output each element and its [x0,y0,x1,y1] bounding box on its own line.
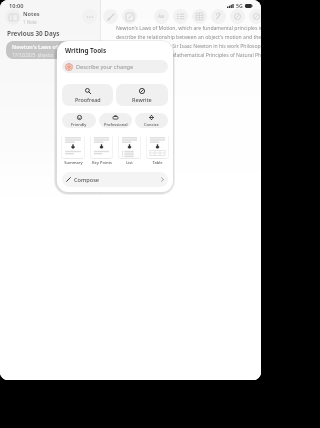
staticText: 1 Note [23,19,37,25]
button[interactable]: Compose [62,172,168,187]
button[interactable]: Checklist [173,9,188,24]
button[interactable]: Concise [135,113,168,128]
staticText: Friendly [71,122,87,127]
staticText: Describe your change [76,63,134,71]
staticText: Professional [104,122,128,127]
staticText: Proofread [75,96,101,103]
button[interactable]: Key Points [91,134,112,165]
button[interactable]: Proofread [62,84,113,106]
staticText: Compose [74,176,100,184]
button[interactable]: Newton's Laws of Motio [6,41,97,59]
button[interactable]: Friendly [62,113,96,128]
staticText: Concise [144,122,159,127]
button[interactable]: Table [147,134,168,165]
staticText: Notes [23,10,40,18]
button[interactable]: Summary [62,134,84,165]
button[interactable]: Share [249,9,261,24]
staticText: Key Points [92,160,112,165]
button[interactable]: Describe your change [62,60,168,73]
staticText: Summary [64,160,83,165]
staticText: Previous 30 Days [7,29,60,38]
staticText: 17/12/2025 physics [12,52,53,58]
staticText: Aa [158,13,165,20]
staticText: Writing Tools [65,46,107,55]
button[interactable]: List [119,134,140,165]
staticText: 10:00 [9,2,24,10]
button[interactable]: Markup [103,9,118,24]
button[interactable]: Attach file [211,9,226,24]
staticText: 5G [236,2,243,9]
staticText: Newton's Laws of Motion, which are funda… [116,25,261,67]
staticText: Table [152,160,163,165]
button[interactable]: New note [122,9,137,24]
button[interactable]: Apple Intelligence [230,9,245,24]
button[interactable]: More options [82,9,97,24]
staticText: Newton's Laws of Motio [12,43,75,50]
staticText: Rewrite [132,96,152,103]
button[interactable]: Professional [99,113,132,128]
button[interactable]: Table [192,9,207,24]
staticText: List [126,160,133,165]
button[interactable]: Format text [154,9,169,24]
button[interactable]: Rewrite [116,84,168,106]
